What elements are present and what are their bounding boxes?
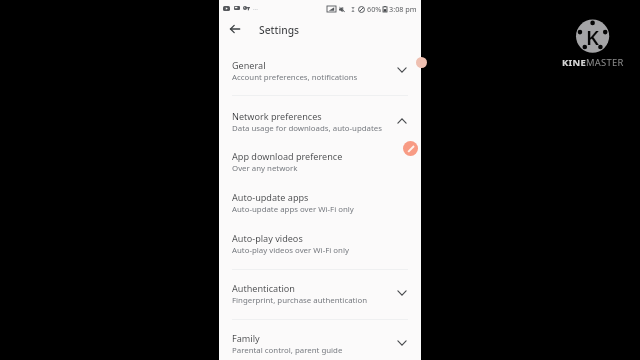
staticText: 60%	[367, 4, 382, 14]
button[interactable]: App download preference	[219, 147, 421, 173]
staticText: Parental control, parent guide	[232, 345, 343, 356]
button[interactable]: Screen recorder bubble	[416, 57, 427, 68]
staticText: General	[232, 59, 266, 71]
staticText: Data usage for downloads, auto-updates	[232, 123, 382, 134]
button[interactable]: Network preferences	[219, 107, 421, 133]
staticText: MASTER	[586, 56, 624, 69]
staticText: Network preferences	[232, 110, 322, 122]
button[interactable]: Family	[219, 329, 421, 355]
staticText: Over any network	[232, 163, 298, 174]
staticText: ...	[253, 4, 258, 12]
staticText: Auto-play videos over Wi-Fi only	[232, 245, 349, 256]
staticText: 3:08 pm	[389, 4, 417, 14]
button[interactable]: Edit	[403, 141, 418, 156]
button[interactable]: Authentication	[219, 279, 421, 305]
staticText: Auto-play videos	[232, 232, 303, 244]
staticText: Account preferences, notifications	[232, 72, 358, 83]
staticText: KINE	[562, 56, 586, 69]
button[interactable]: Back	[228, 22, 242, 36]
staticText: Family	[232, 332, 260, 344]
staticText: Authentication	[232, 282, 295, 294]
button[interactable]: Auto-play videos	[219, 229, 421, 255]
staticText: App download preference	[232, 150, 343, 162]
staticText: Settings	[259, 23, 300, 37]
staticText: Auto-update apps	[232, 191, 309, 203]
staticText: K	[586, 24, 599, 51]
button[interactable]: General	[219, 56, 421, 82]
staticText: Fingerprint, purchase authentication	[232, 295, 367, 306]
staticText: Auto-update apps over Wi-Fi only	[232, 204, 354, 215]
button[interactable]: Auto-update apps	[219, 188, 421, 214]
